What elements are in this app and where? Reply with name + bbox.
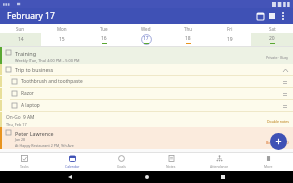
button[interactable]: 17 (125, 33, 167, 46)
button[interactable]: More (244, 153, 293, 171)
button[interactable]: Switch view (266, 10, 278, 22)
button[interactable]: Recents (216, 171, 230, 183)
button[interactable]: 20 (251, 33, 293, 46)
staticText: Trip to business (15, 66, 54, 73)
staticText: A laptop (21, 102, 40, 109)
button[interactable]: Notes (146, 153, 195, 171)
staticText: 17 (143, 35, 149, 42)
button[interactable]: Collapse (280, 65, 290, 75)
staticText: Weekly (Tue, Thu) 4:00 PM – 5:00 PM (15, 58, 80, 63)
staticText: Tasks (20, 164, 29, 169)
staticText: Double notes (267, 119, 289, 124)
staticText: Notes (166, 164, 176, 169)
staticText: Sun (16, 26, 25, 32)
staticText: 19 (227, 36, 233, 43)
staticText: Birthdays (15) (266, 140, 289, 145)
button[interactable]: Peter Lawrence (0, 127, 293, 149)
button[interactable]: 16 (83, 33, 125, 46)
staticText: Private · Busy (266, 55, 289, 60)
staticText: Wed (141, 26, 151, 32)
button[interactable]: 18 (167, 33, 209, 46)
button[interactable]: On-Go (0, 112, 293, 127)
button[interactable]: Create event (270, 133, 287, 150)
staticText: Razor (21, 90, 34, 97)
staticText: Thu (184, 26, 193, 32)
button[interactable]: Goals (97, 153, 146, 171)
staticText: Jan 28 (15, 137, 25, 142)
staticText: 18 (185, 35, 191, 42)
staticText: 9 AM (23, 114, 35, 121)
staticText: At Happy Restaurant 2 PM, 9th Ave (15, 143, 74, 148)
staticText: February 17 (7, 10, 55, 22)
button[interactable]: Calendar (48, 153, 97, 171)
staticText: More (264, 164, 273, 169)
button[interactable]: Drag handle (280, 89, 290, 99)
button[interactable]: More options (278, 11, 288, 21)
button[interactable]: Drag handle (280, 101, 290, 111)
staticText: 16 (101, 35, 107, 42)
button[interactable]: 19 (209, 33, 251, 46)
button[interactable]: Trip to business (0, 64, 293, 75)
staticText: Mon (57, 26, 67, 32)
staticText: Training (15, 50, 37, 57)
button[interactable]: Drag handle (280, 77, 290, 87)
staticText: 20 (269, 35, 275, 42)
button[interactable]: Attendance (195, 153, 244, 171)
staticText: Thu, Feb 17 (6, 122, 27, 127)
staticText: Fri (227, 26, 233, 32)
staticText: On-Go (6, 114, 21, 121)
staticText: Peter Lawrence (15, 130, 54, 137)
staticText: Calendar (65, 164, 80, 169)
button[interactable]: 15 (41, 33, 83, 46)
button[interactable]: Razor (0, 88, 293, 99)
staticText: 14 (18, 36, 24, 43)
staticText: Attendance (210, 164, 229, 169)
button[interactable]: Toothbrush and toothpaste (0, 76, 293, 87)
staticText: Goals (117, 164, 126, 169)
button[interactable]: A laptop (0, 100, 293, 111)
button[interactable]: Training (0, 47, 293, 64)
staticText: Toothbrush and toothpaste (21, 78, 83, 85)
staticText: Tue (100, 26, 108, 32)
button[interactable]: Jump to date (254, 10, 266, 22)
button[interactable]: 14 (0, 33, 41, 46)
button[interactable]: Tasks (0, 153, 48, 171)
button[interactable]: Back (63, 171, 77, 183)
staticText: 15 (59, 36, 65, 43)
staticText: Sat (269, 26, 276, 32)
button[interactable]: Home (140, 171, 154, 183)
